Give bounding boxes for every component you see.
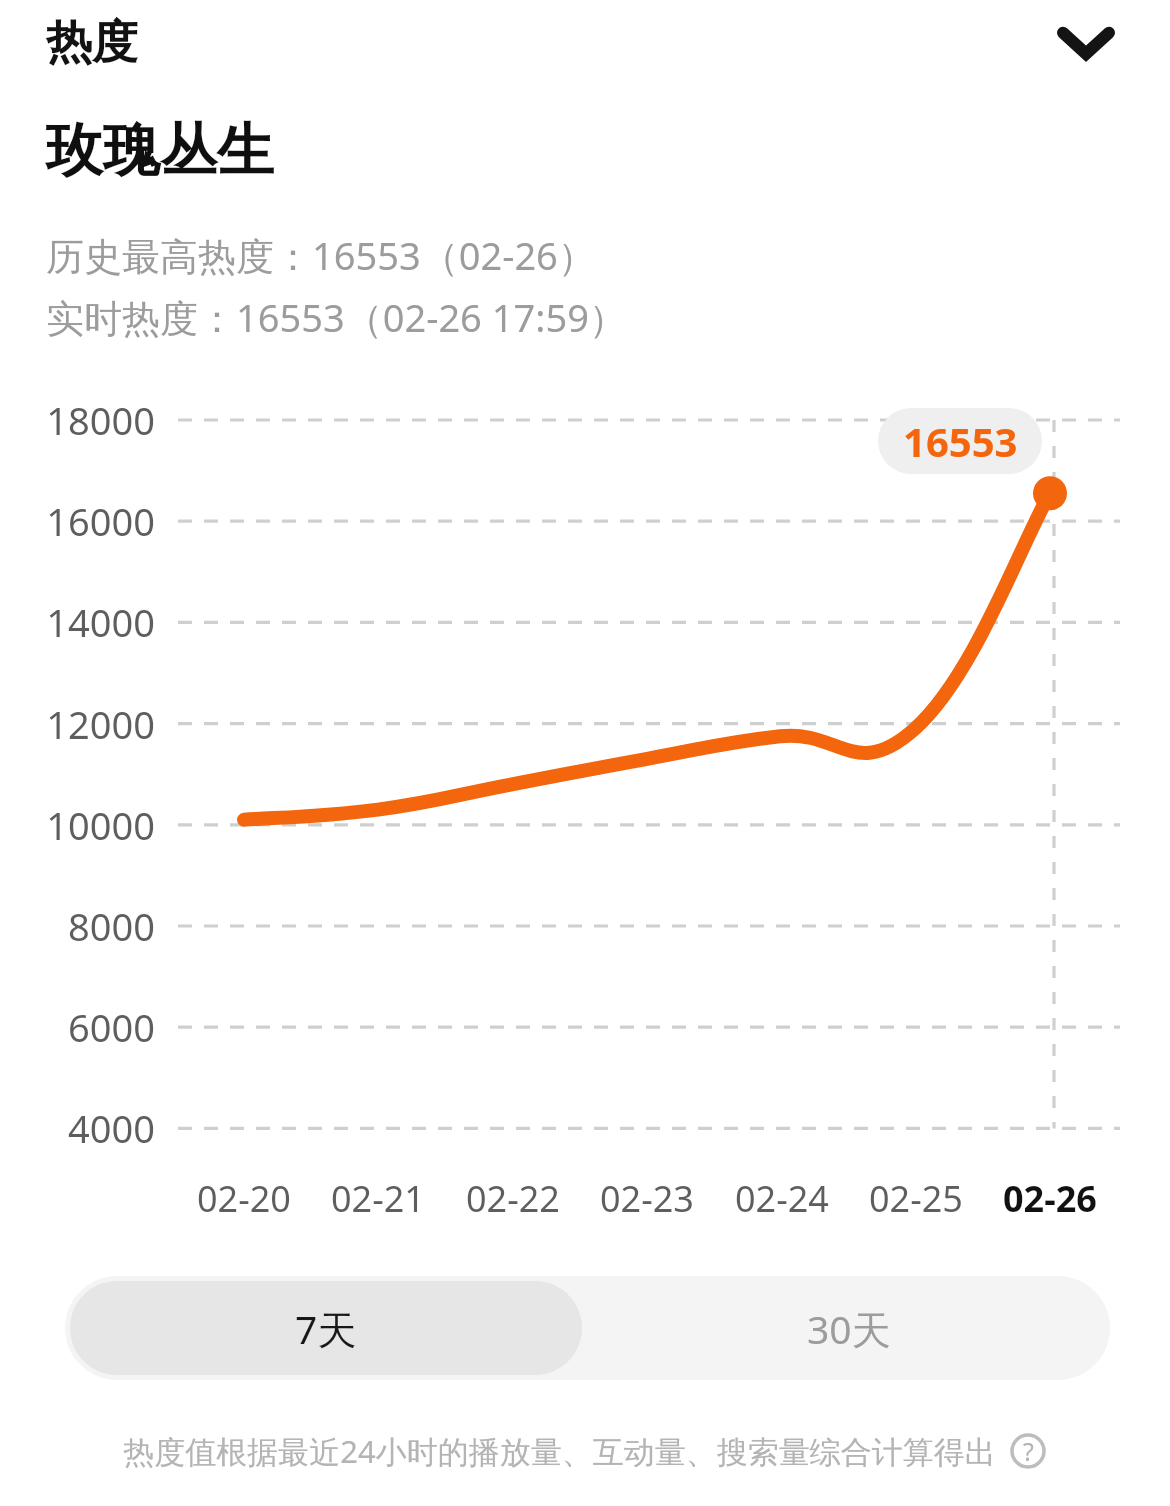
button[interactable]: 7天 xyxy=(70,1281,582,1375)
staticText: 实时热度：16553（02-26 17:59） xyxy=(46,291,627,343)
staticText: 7天 xyxy=(295,1302,357,1355)
button[interactable]: Help xyxy=(1008,1431,1048,1471)
staticText: 12000 xyxy=(46,698,155,750)
staticText: 历史最高热度：16553（02-26） xyxy=(46,229,596,281)
staticText: 热度 xyxy=(46,14,138,72)
staticText: 16553 xyxy=(903,414,1018,468)
staticText: ? xyxy=(1023,1434,1034,1468)
staticText: 02-20 xyxy=(197,1174,291,1223)
staticText: 14000 xyxy=(46,596,155,648)
button[interactable]: 30天 xyxy=(592,1281,1105,1375)
staticText: 4000 xyxy=(68,1102,155,1154)
button[interactable]: Collapse xyxy=(1036,2,1136,84)
staticText: 02-25 xyxy=(869,1174,963,1223)
staticText: 18000 xyxy=(46,394,155,446)
staticText: 02-24 xyxy=(735,1174,829,1223)
staticText: 02-26 xyxy=(1003,1174,1097,1223)
staticText: 热度值根据最近24小时的播放量、互动量、搜索量综合计算得出 xyxy=(123,1430,996,1472)
staticText: 16000 xyxy=(46,495,155,547)
staticText: 02-21 xyxy=(331,1174,425,1223)
staticText: 02-23 xyxy=(600,1174,694,1223)
staticText: 02-22 xyxy=(466,1174,560,1223)
staticText: 8000 xyxy=(68,900,155,952)
staticText: 玫瑰丛生 xyxy=(46,115,274,187)
button[interactable]: 热度 xyxy=(46,14,138,72)
staticText: 6000 xyxy=(68,1001,155,1053)
staticText: 10000 xyxy=(46,799,155,851)
staticText: 30天 xyxy=(807,1302,891,1355)
